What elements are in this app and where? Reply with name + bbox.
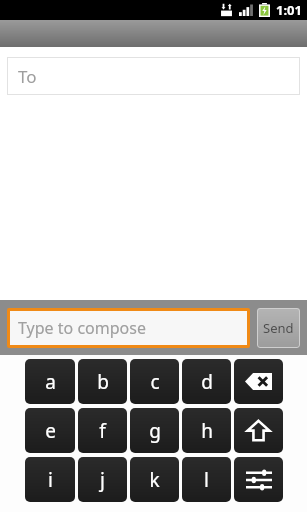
button[interactable]: Backspace bbox=[234, 359, 283, 404]
button[interactable]: b bbox=[78, 359, 127, 404]
staticText: d bbox=[201, 369, 213, 395]
staticText: To bbox=[18, 65, 37, 88]
button[interactable]: h bbox=[182, 408, 231, 453]
button[interactable]: Type to compose bbox=[10, 311, 247, 345]
button[interactable]: k bbox=[130, 457, 179, 502]
button[interactable]: Send bbox=[257, 308, 300, 348]
staticText: Send bbox=[263, 319, 294, 337]
button[interactable]: i bbox=[25, 457, 75, 502]
staticText: h bbox=[201, 418, 213, 444]
button[interactable]: a bbox=[25, 359, 75, 404]
button[interactable]: To bbox=[7, 57, 300, 95]
staticText: e bbox=[45, 418, 56, 444]
staticText: l bbox=[204, 467, 209, 493]
button[interactable]: j bbox=[78, 457, 127, 502]
button[interactable]: f bbox=[78, 408, 127, 453]
button[interactable]: e bbox=[25, 408, 75, 453]
staticText: k bbox=[149, 467, 160, 493]
staticText: i bbox=[48, 467, 53, 493]
button[interactable]: Shift bbox=[234, 408, 283, 453]
button[interactable]: c bbox=[130, 359, 179, 404]
button[interactable]: Keyboard settings bbox=[234, 457, 283, 502]
button[interactable]: d bbox=[182, 359, 231, 404]
staticText: c bbox=[150, 369, 160, 395]
staticText: j bbox=[100, 467, 105, 493]
staticText: 1:01 bbox=[276, 1, 302, 19]
staticText: b bbox=[97, 369, 109, 395]
staticText: a bbox=[45, 369, 56, 395]
staticText: g bbox=[149, 418, 161, 444]
button[interactable]: l bbox=[182, 457, 231, 502]
staticText: f bbox=[99, 418, 106, 444]
button[interactable]: g bbox=[130, 408, 179, 453]
staticText: Type to compose bbox=[18, 317, 146, 339]
